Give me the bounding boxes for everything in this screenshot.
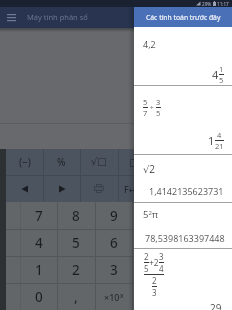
staticText: 3 (152, 287, 157, 298)
button[interactable]: 4,2 (134, 27, 232, 85)
button[interactable]: ×10 (95, 283, 132, 310)
button[interactable]: 1 (20, 256, 57, 283)
staticText: 3 (159, 251, 164, 262)
staticText: 7 (143, 108, 148, 118)
staticText: 5 (219, 75, 224, 85)
button[interactable]: 4 (20, 229, 57, 256)
staticText: 1 (208, 133, 215, 148)
button[interactable]: √□ (80, 149, 118, 175)
button[interactable]: 2 (134, 249, 232, 310)
staticText: 11:17 (217, 1, 229, 7)
staticText: 4,2 (143, 38, 156, 50)
button[interactable]: (−) (6, 149, 43, 175)
staticText: 5 (144, 263, 149, 274)
staticText: 2 (144, 251, 149, 262)
staticText: 52π (143, 208, 159, 221)
button[interactable]: 7 (20, 202, 57, 229)
staticText: 4 (159, 263, 164, 274)
button[interactable]: F↔D (118, 175, 149, 202)
staticText: 7 (35, 207, 43, 225)
staticText: 9 (110, 207, 118, 225)
button[interactable] (6, 175, 43, 202)
button[interactable]: 5 (134, 86, 232, 154)
staticText: 5 (156, 108, 161, 118)
staticText: 6 (110, 234, 118, 252)
button[interactable]: 9 (95, 202, 132, 229)
staticText: 1 (35, 261, 43, 279)
button[interactable]: 5 (57, 229, 95, 256)
staticText: 1 (219, 64, 224, 74)
staticText: 2 (72, 261, 80, 279)
staticText: Máy tính phân số (27, 12, 88, 22)
button[interactable] (80, 175, 118, 202)
staticText: ×10 (104, 291, 120, 303)
button[interactable]: 52π (134, 203, 232, 248)
button[interactable]: √2 (134, 155, 232, 202)
staticText: √□ (91, 156, 107, 168)
button[interactable]: 3 (95, 256, 132, 283)
staticText: 4 (35, 234, 43, 252)
button[interactable]: % (43, 149, 80, 175)
button[interactable]: 0 (20, 283, 57, 310)
staticText: 3 (110, 261, 118, 279)
staticText: 5 (143, 97, 148, 107)
staticText: 21 (215, 141, 224, 151)
staticText: x (120, 291, 124, 300)
staticText: 5 (72, 234, 80, 252)
button[interactable] (5, 12, 18, 23)
staticText: F↔D (124, 183, 143, 195)
staticText: 3 (156, 97, 161, 107)
button[interactable]: 6 (95, 229, 132, 256)
button[interactable]: 2 (57, 256, 95, 283)
staticText: 8 (72, 207, 80, 225)
staticText: 29 (210, 301, 222, 310)
button[interactable]: , (57, 283, 95, 310)
staticText: 4 (217, 130, 222, 140)
staticText: 1,4142135623731 (149, 185, 224, 197)
staticText: 2 (152, 275, 157, 286)
button[interactable]: 8 (57, 202, 95, 229)
staticText: +2 (149, 257, 159, 269)
staticText: , (74, 288, 78, 306)
staticText: 0 (35, 288, 43, 306)
staticText: 4 (212, 67, 219, 82)
staticText: 29% (202, 1, 212, 7)
staticText: 78,5398163397448 (145, 232, 225, 244)
staticText: √2 (143, 162, 156, 176)
button[interactable]: □x (118, 149, 155, 175)
staticText: % (57, 155, 66, 169)
staticText: □x (129, 155, 144, 169)
staticText: ÷ (148, 103, 156, 113)
staticText: (−) (19, 155, 31, 169)
staticText: Các tính toán trước đây (146, 13, 221, 22)
button[interactable] (43, 175, 80, 202)
